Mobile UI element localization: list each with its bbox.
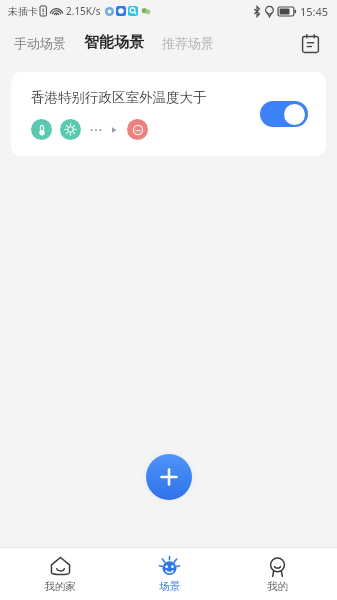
staticText: 推荐场景	[162, 35, 214, 51]
staticText: 我的家	[44, 580, 76, 593]
staticText: 我的	[267, 580, 288, 593]
button[interactable]: 场景	[121, 552, 217, 597]
button[interactable]: 智能场景	[82, 29, 146, 56]
staticText: 15:45	[300, 4, 329, 19]
button[interactable]: 亮度动作	[60, 119, 81, 140]
button[interactable]: 添加场景	[146, 454, 192, 500]
staticText: 2.15K/s	[66, 4, 101, 18]
staticText: 未插卡	[8, 5, 38, 18]
staticText: 手动场景	[14, 35, 66, 51]
staticText: 场景	[159, 580, 180, 593]
button[interactable]: 场景日志	[295, 28, 325, 58]
button[interactable]: 启用场景	[260, 101, 308, 127]
button[interactable]: 推荐场景	[160, 31, 216, 55]
button[interactable]: 我的家	[12, 552, 108, 597]
button[interactable]: 香港特别行政区室外温度大于	[11, 72, 326, 156]
button[interactable]: 温度条件	[31, 119, 52, 140]
button[interactable]: 我的	[229, 552, 325, 597]
button[interactable]: 手动场景	[12, 31, 68, 55]
staticText: 香港特别行政区室外温度大于	[31, 89, 207, 106]
staticText: 智能场景	[84, 33, 144, 52]
button[interactable]: 设备动作	[127, 119, 148, 140]
